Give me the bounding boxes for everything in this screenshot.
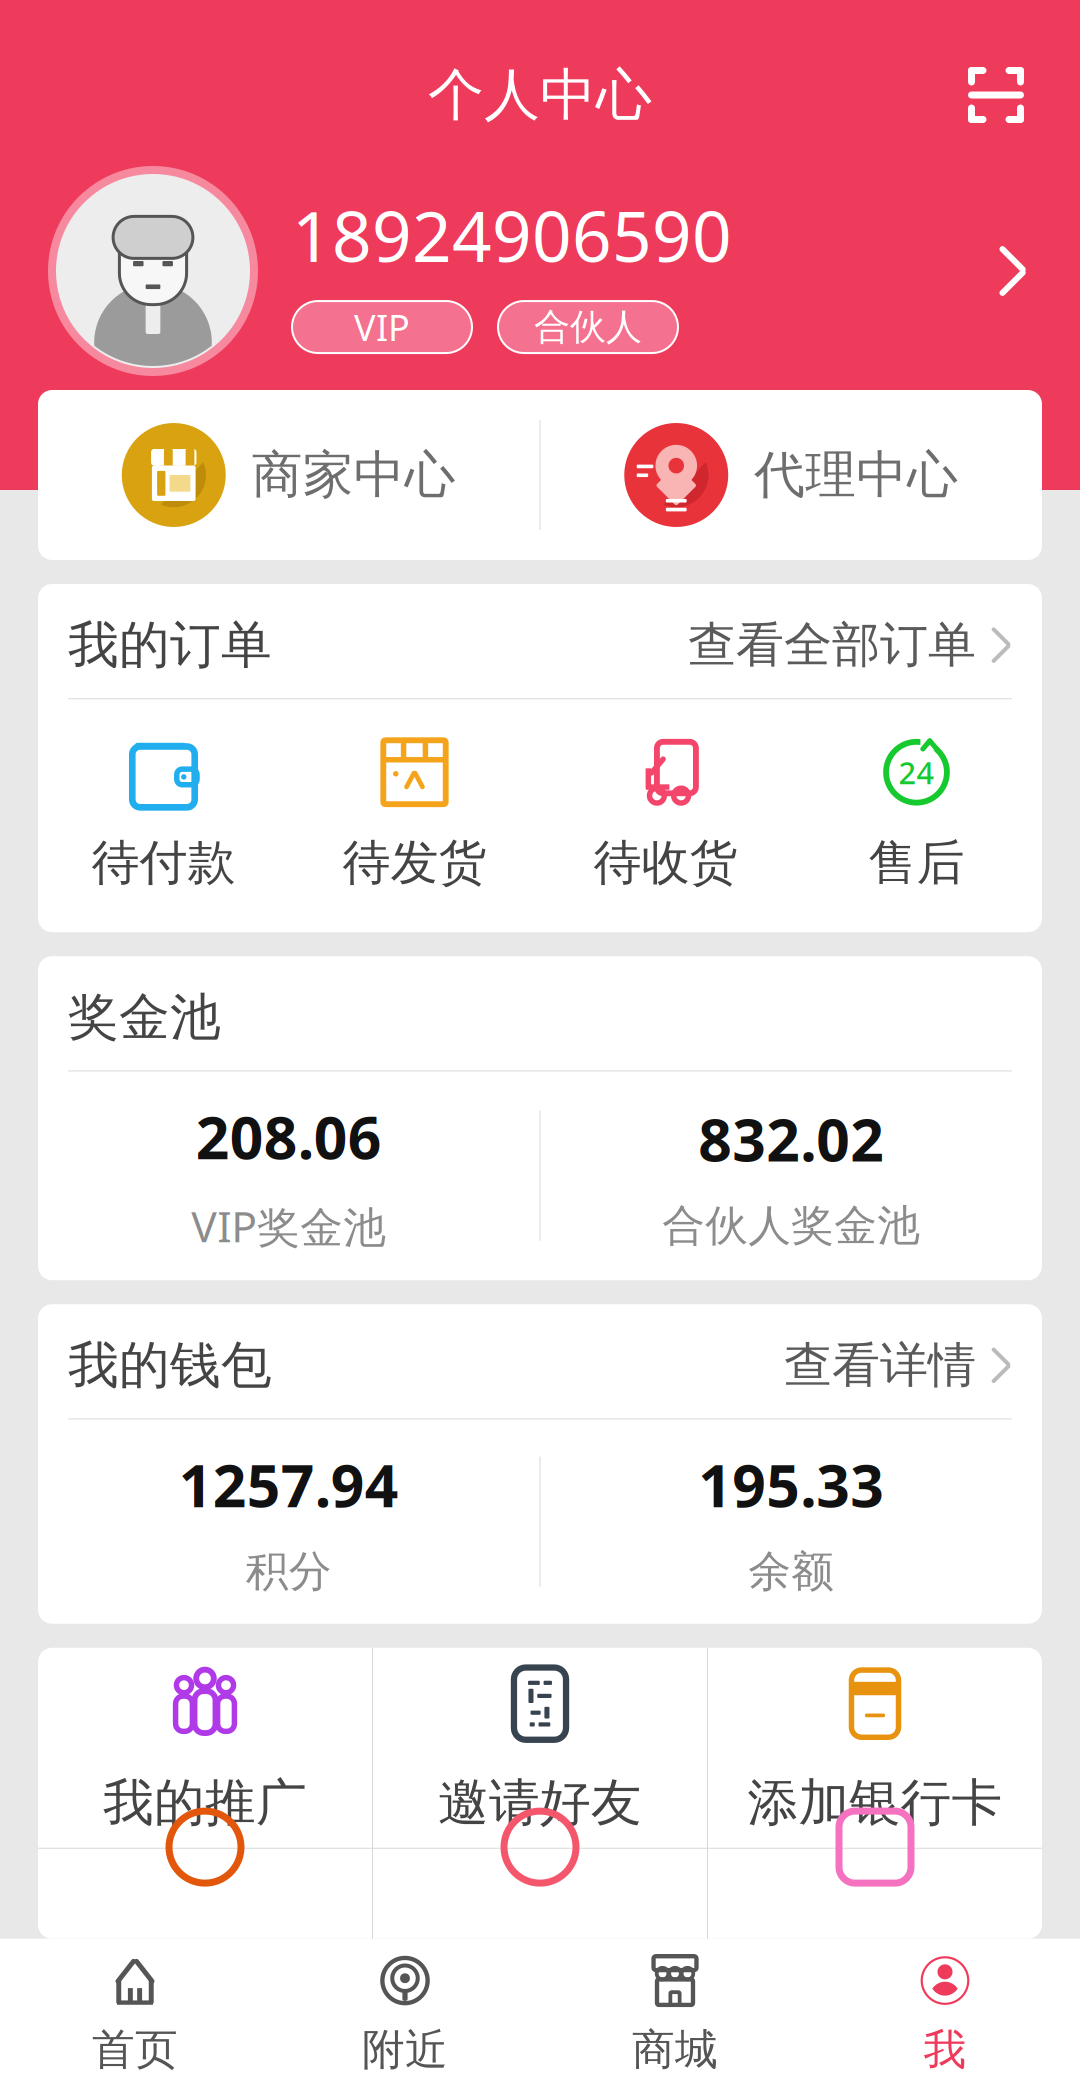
button[interactable]: 我: [810, 1944, 1080, 2084]
staticText: 195.33: [698, 1445, 884, 1523]
button[interactable]: 24: [791, 727, 1042, 898]
staticText: 商家中心: [252, 444, 456, 506]
button[interactable]: 扫一扫: [948, 47, 1044, 143]
button[interactable]: 查看详情: [784, 1336, 1012, 1395]
button[interactable]: 附近: [270, 1944, 540, 2084]
staticText: 查看全部订单: [688, 616, 976, 675]
staticText: 208.06: [196, 1097, 382, 1175]
button[interactable]: [38, 1794, 372, 1994]
button[interactable]: 18924906590: [0, 166, 1080, 376]
staticText: 售后: [868, 833, 964, 892]
staticText: 待付款: [91, 833, 235, 892]
staticText: 商城: [632, 2024, 718, 2076]
button[interactable]: 商家中心: [38, 390, 539, 560]
button[interactable]: 邀请好友: [373, 1648, 707, 1848]
staticText: 个人中心: [428, 61, 652, 129]
staticText: VIP: [354, 303, 410, 351]
staticText: 我的订单: [68, 614, 272, 676]
staticText: 24: [898, 752, 934, 793]
staticText: 查看详情: [784, 1336, 976, 1395]
staticText: 1257.94: [179, 1445, 399, 1523]
button[interactable]: 代理中心: [540, 390, 1042, 560]
staticText: 我的钱包: [68, 1334, 272, 1396]
button[interactable]: [708, 1794, 1042, 1994]
button[interactable]: 商城: [540, 1944, 810, 2084]
staticText: 积分: [246, 1545, 332, 1598]
staticText: 18924906590: [292, 189, 732, 281]
staticText: 我: [923, 2024, 966, 2076]
staticText: 待收货: [593, 833, 737, 892]
staticText: 合伙人: [534, 305, 642, 349]
staticText: 添加银行卡: [747, 1772, 1002, 1834]
staticText: 邀请好友: [438, 1772, 642, 1834]
staticText: 余额: [748, 1545, 834, 1598]
button[interactable]: 待发货: [289, 727, 540, 898]
staticText: 附近: [362, 2024, 448, 2076]
button[interactable]: 添加银行卡: [708, 1648, 1042, 1848]
staticText: 待发货: [342, 833, 486, 892]
button[interactable]: 查看全部订单: [688, 616, 1012, 675]
button[interactable]: 待收货: [540, 727, 791, 898]
button[interactable]: 我的推广: [38, 1648, 372, 1848]
staticText: 我的推广: [103, 1772, 307, 1834]
staticText: 代理中心: [754, 444, 958, 506]
button[interactable]: 待付款: [38, 727, 289, 898]
button[interactable]: 首页: [0, 1944, 270, 2084]
staticText: 奖金池: [68, 986, 221, 1048]
staticText: 合伙人奖金池: [662, 1200, 920, 1252]
button[interactable]: [373, 1794, 707, 1994]
staticText: 首页: [92, 2024, 178, 2076]
staticText: VIP奖金池: [191, 1197, 386, 1254]
staticText: 832.02: [698, 1100, 884, 1178]
